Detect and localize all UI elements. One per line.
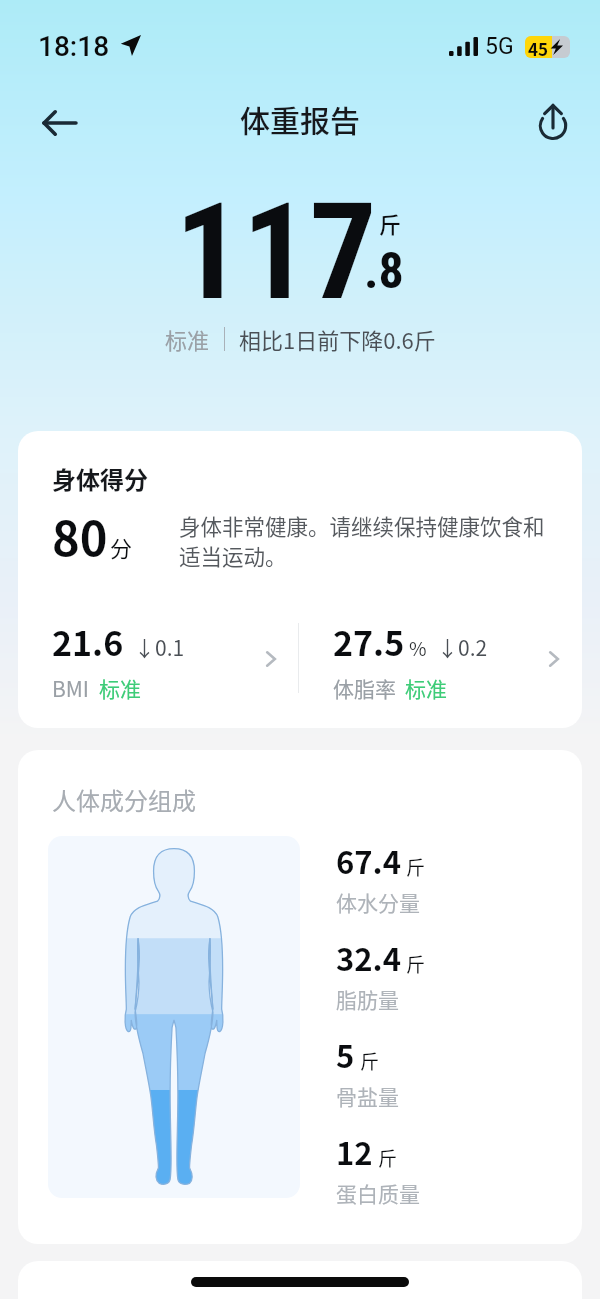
- staticText: .8: [364, 242, 404, 301]
- button[interactable]: 21.6: [18, 617, 299, 701]
- staticText: 斤: [360, 1047, 380, 1075]
- staticText: 斤: [406, 950, 426, 978]
- staticText: 身体得分: [52, 461, 148, 496]
- staticText: %: [409, 634, 427, 662]
- staticText: 45: [528, 36, 549, 58]
- staticText: 67.4: [336, 838, 401, 883]
- staticText: 标准: [165, 323, 210, 355]
- staticText: 标准: [405, 673, 447, 701]
- staticText: 5G: [485, 33, 514, 60]
- button[interactable]: 27.5: [299, 617, 582, 701]
- staticText: ↓0.1: [134, 632, 185, 662]
- staticText: 相比1日前下降0.6斤: [239, 323, 436, 355]
- staticText: 18:18: [38, 30, 110, 63]
- button[interactable]: Back: [32, 95, 88, 151]
- staticText: 12: [336, 1129, 373, 1174]
- staticText: 体脂率: [333, 673, 396, 701]
- staticText: 斤: [379, 207, 402, 239]
- staticText: 标准: [99, 673, 141, 701]
- staticText: 27.5: [333, 617, 405, 666]
- staticText: ↓0.2: [437, 632, 488, 662]
- staticText: 斤: [406, 853, 426, 881]
- button[interactable]: Share: [526, 92, 580, 146]
- staticText: 分: [110, 531, 133, 563]
- staticText: 骨盐量: [336, 1081, 399, 1111]
- staticText: 80: [52, 501, 108, 569]
- staticText: 体重报告: [240, 97, 360, 140]
- staticText: 身体非常健康。请继续保持健康饮食和适当运动。: [179, 510, 553, 571]
- staticText: 斤: [378, 1144, 398, 1172]
- staticText: 人体成分组成: [52, 782, 196, 817]
- staticText: 32.4: [336, 935, 401, 980]
- staticText: 体水分量: [336, 887, 420, 917]
- staticText: 5: [336, 1032, 355, 1077]
- staticText: 脂肪量: [336, 984, 399, 1014]
- staticText: 117: [175, 175, 377, 331]
- staticText: 21.6: [52, 617, 124, 666]
- staticText: 蛋白质量: [336, 1178, 420, 1208]
- staticText: BMI: [52, 673, 90, 701]
